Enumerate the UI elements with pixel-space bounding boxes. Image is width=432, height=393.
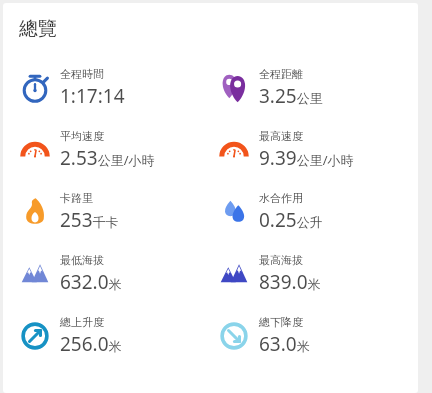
- staticText: 全程距離: [259, 67, 303, 81]
- button[interactable]: Min altitude: [17, 243, 210, 305]
- staticText: 9.39公里/小時: [259, 145, 354, 171]
- staticText: 平均速度: [60, 129, 104, 143]
- staticText: 總上升度: [60, 315, 104, 329]
- staticText: 卡路里: [60, 191, 93, 205]
- button[interactable]: Calories: [17, 181, 210, 243]
- staticText: 632.0米: [60, 269, 122, 295]
- staticText: 256.0米: [60, 331, 122, 357]
- staticText: 最低海拔: [60, 253, 104, 267]
- staticText: 2.53公里/小時: [60, 145, 155, 171]
- button[interactable]: Max speed: [216, 119, 418, 181]
- staticText: 839.0米: [259, 269, 321, 295]
- staticText: 水合作用: [259, 191, 303, 205]
- staticText: 0.25公升: [259, 207, 323, 233]
- button[interactable]: Max altitude: [216, 243, 418, 305]
- staticText: 最高速度: [259, 129, 303, 143]
- button[interactable]: Total distance: [216, 57, 418, 119]
- staticText: 總覽: [19, 17, 57, 41]
- button[interactable]: Total ascent: [17, 305, 210, 367]
- staticText: 總下降度: [259, 315, 303, 329]
- button[interactable]: Hydration: [216, 181, 418, 243]
- staticText: 最高海拔: [259, 253, 303, 267]
- button[interactable]: Total time: [17, 57, 210, 119]
- staticText: 253千卡: [60, 207, 119, 233]
- button[interactable]: Average speed: [17, 119, 210, 181]
- button[interactable]: Total descent: [216, 305, 418, 367]
- staticText: 3.25公里: [259, 83, 323, 109]
- staticText: 1:17:14: [60, 83, 125, 109]
- staticText: 全程時間: [60, 67, 104, 81]
- staticText: 63.0米: [259, 331, 310, 357]
